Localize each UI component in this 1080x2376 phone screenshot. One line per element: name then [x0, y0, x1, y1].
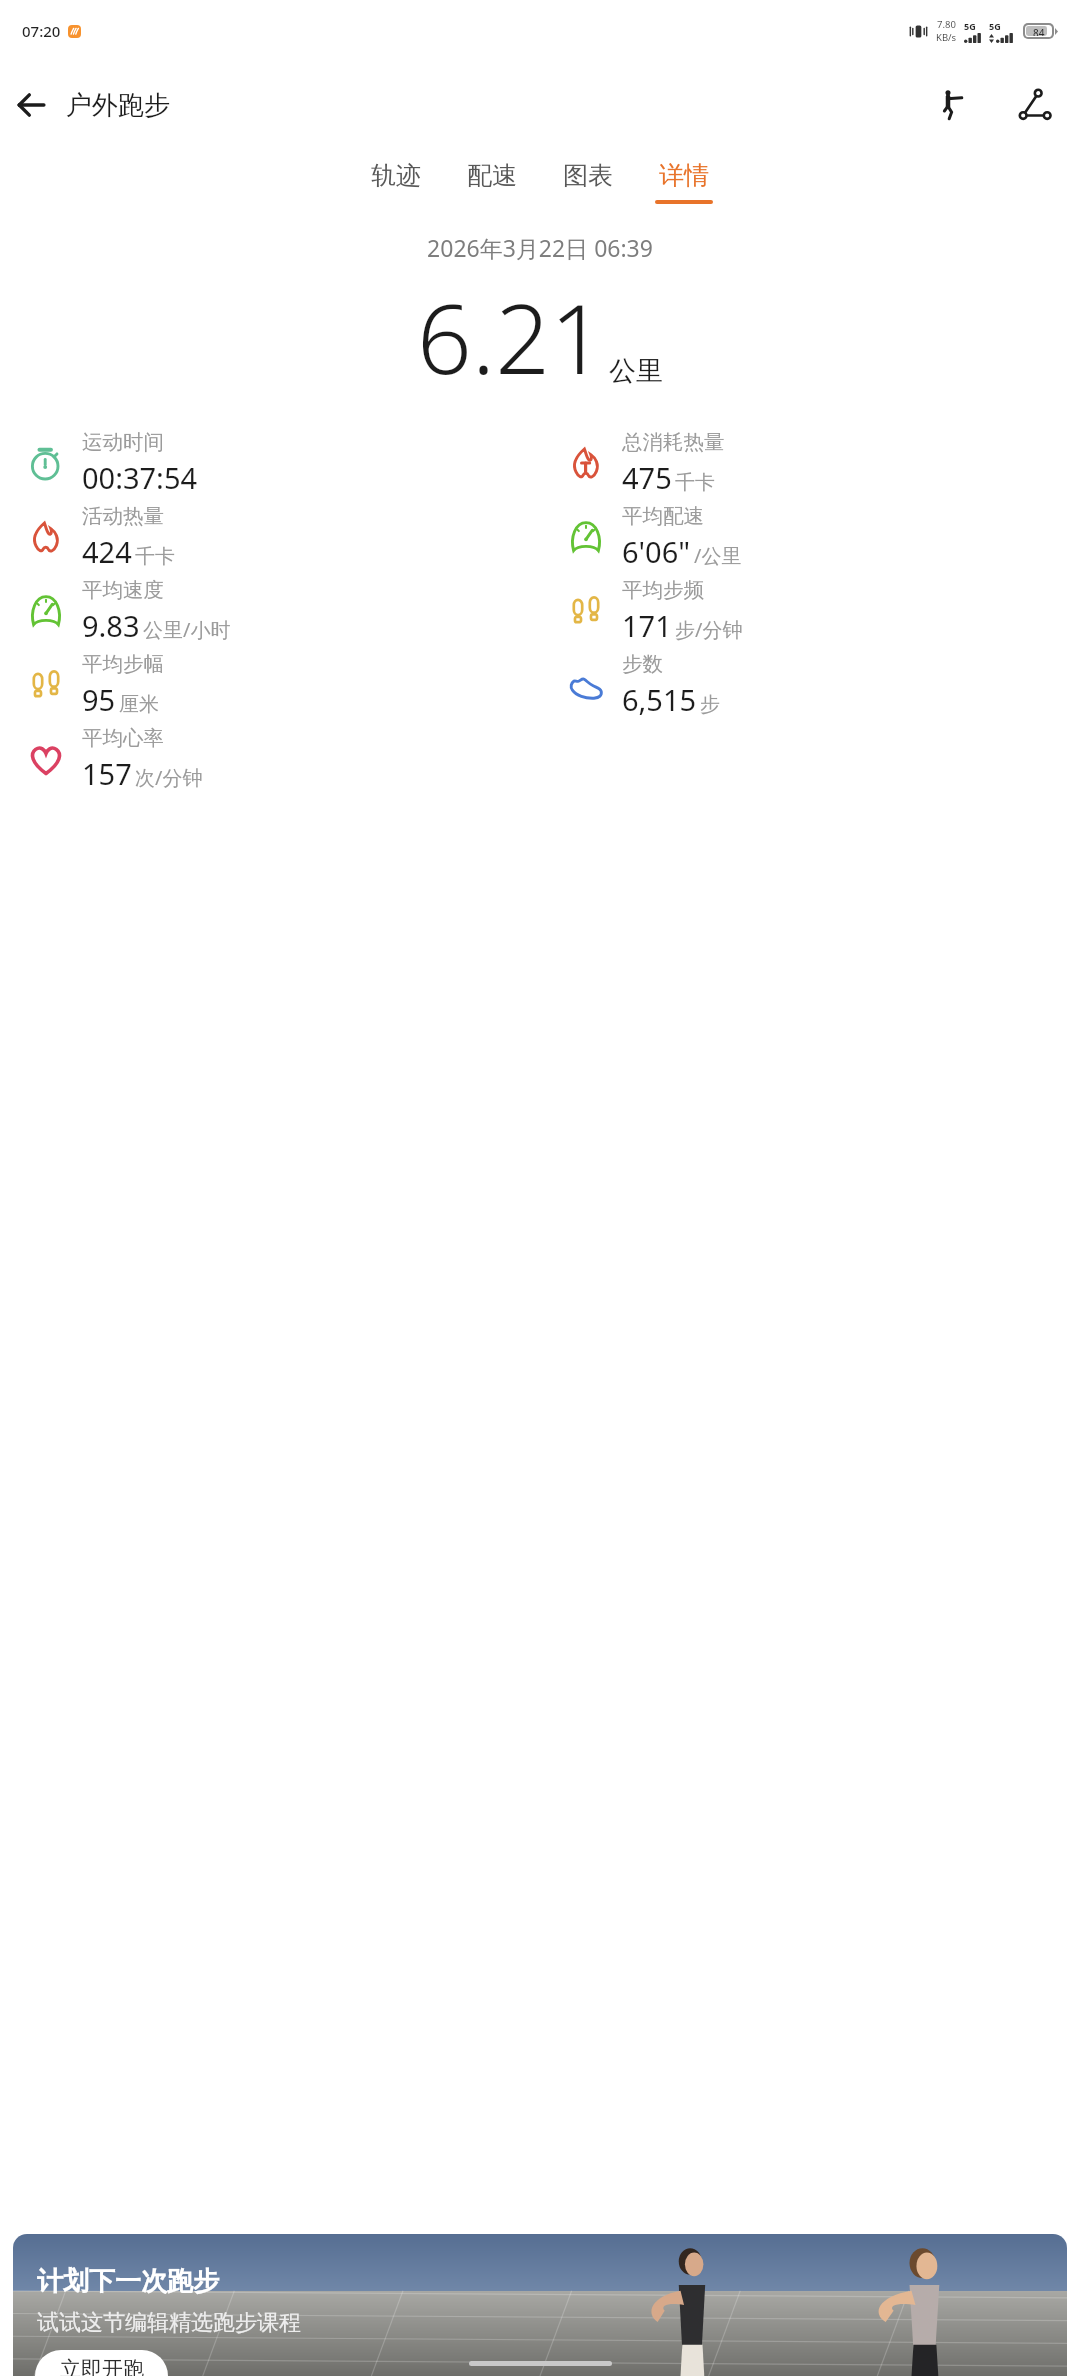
button[interactable]: 配速 [444, 156, 540, 208]
staticText: 6'06" [622, 532, 691, 571]
staticText: 7.80 [937, 18, 956, 31]
staticText: 平均速度 [82, 577, 164, 603]
button[interactable]: 平均速度 [0, 574, 540, 648]
staticText: 步 [700, 692, 720, 717]
staticText: 详情 [659, 160, 709, 191]
button[interactable]: 总消耗热量 [540, 426, 1080, 500]
staticText: 157 [82, 754, 132, 793]
staticText: 6.21 [417, 271, 605, 402]
staticText: 平均步频 [622, 577, 704, 603]
staticText: 2026年3月22日 06:39 [0, 232, 1080, 263]
staticText: 84 [1033, 26, 1045, 36]
staticText: KB/s [936, 31, 957, 44]
button[interactable]: 活动热量 [0, 500, 540, 574]
staticText: 424 [82, 532, 132, 571]
staticText: 活动热量 [82, 503, 164, 529]
staticText: 户外跑步 [66, 89, 170, 122]
staticText: 9.83 [82, 606, 140, 645]
staticText: 厘米 [119, 692, 159, 717]
staticText: 次/分钟 [135, 764, 203, 791]
staticText: 95 [82, 680, 116, 719]
button[interactable]: 平均步幅 [0, 648, 540, 722]
staticText: 5G [989, 20, 1001, 32]
button[interactable]: 图表 [540, 156, 636, 208]
staticText: 轨迹 [371, 160, 421, 191]
staticText: 平均心率 [82, 725, 164, 751]
button[interactable]: 计划下一次跑步 [13, 2234, 1067, 2376]
button[interactable]: 返回 [0, 74, 62, 136]
staticText: 千卡 [675, 470, 715, 495]
button[interactable]: 平均心率 [0, 722, 540, 796]
staticText: 千卡 [135, 544, 175, 569]
button[interactable]: 平均配速 [540, 500, 1080, 574]
button[interactable]: 平均步频 [540, 574, 1080, 648]
staticText: 立即开跑 [60, 2356, 144, 2376]
button[interactable]: 步数 [540, 648, 1080, 722]
staticText: 试试这节编辑精选跑步课程 [37, 2309, 301, 2337]
staticText: 171 [622, 606, 672, 645]
button[interactable]: 运动时间 [0, 426, 540, 500]
staticText: /公里 [694, 542, 742, 569]
staticText: 总消耗热量 [622, 429, 725, 455]
staticText: 07:20 [22, 21, 61, 41]
staticText: 步数 [622, 651, 663, 677]
staticText: 公里/小时 [143, 616, 231, 643]
staticText: 运动时间 [82, 429, 164, 455]
staticText: 计划下一次跑步 [37, 2265, 219, 2298]
staticText: 平均配速 [622, 503, 704, 529]
staticText: 6,515 [622, 680, 697, 719]
button[interactable]: 详情 [636, 156, 732, 208]
staticText: 公里 [609, 354, 663, 388]
button[interactable]: 轨迹 [348, 156, 444, 208]
staticText: 配速 [467, 160, 517, 191]
button[interactable]: 分享 [1004, 74, 1066, 136]
button[interactable]: 立即开跑 [35, 2350, 168, 2376]
staticText: 步/分钟 [675, 616, 743, 643]
staticText: 00:37:54 [82, 458, 198, 497]
button[interactable]: 运动记录 [920, 74, 982, 136]
staticText: 475 [622, 458, 672, 497]
staticText: 图表 [563, 160, 613, 191]
staticText: 5G [964, 20, 976, 32]
staticText: 平均步幅 [82, 651, 164, 677]
